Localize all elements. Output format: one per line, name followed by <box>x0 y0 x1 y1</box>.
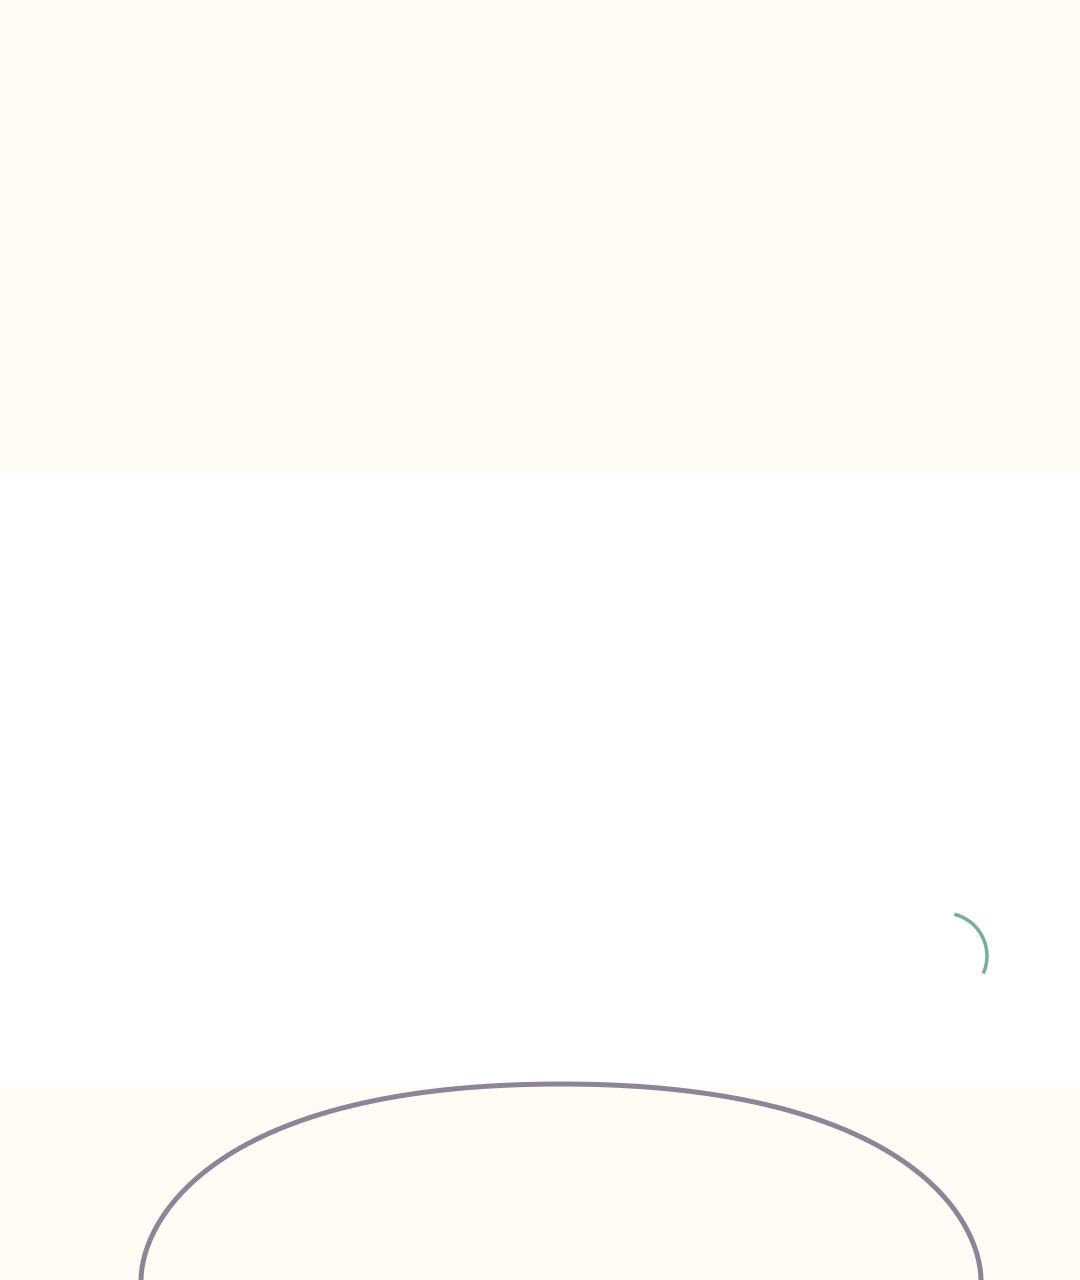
button[interactable]: Continue <box>0 473 1080 1086</box>
button[interactable]: More options <box>0 1086 1080 1280</box>
